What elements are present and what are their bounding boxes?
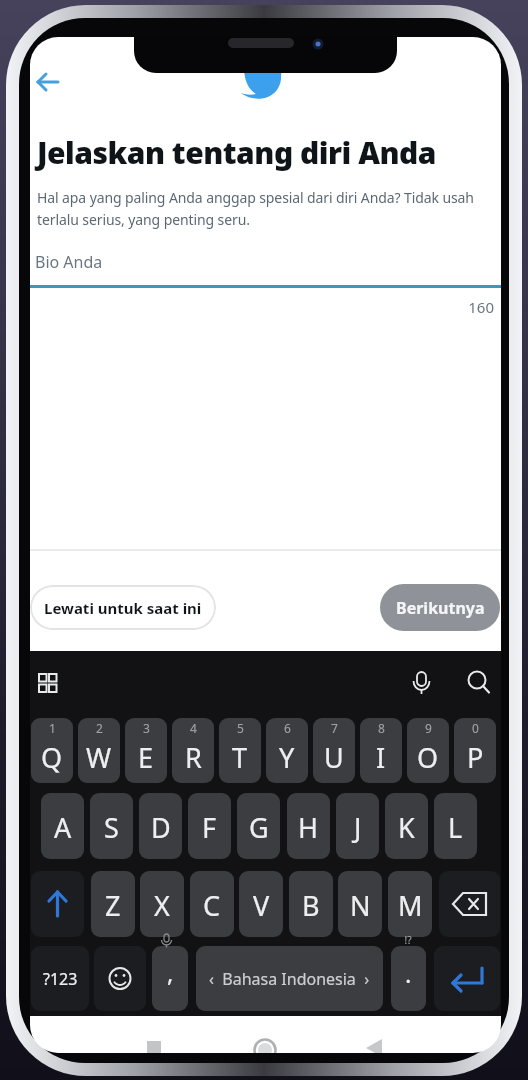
- staticText: A: [54, 809, 72, 846]
- staticText: U: [324, 739, 344, 776]
- staticText: D: [151, 809, 171, 846]
- button[interactable]: F: [188, 793, 231, 859]
- staticText: 160: [414, 297, 494, 317]
- staticText: R: [185, 739, 202, 776]
- button[interactable]: 2: [78, 718, 120, 783]
- staticText: F: [202, 809, 217, 846]
- button[interactable]: A: [41, 793, 84, 859]
- staticText: Berikutnya: [396, 597, 485, 619]
- button[interactable]: Berikutnya: [380, 584, 500, 631]
- staticText: ?123: [43, 968, 78, 990]
- staticText: 5: [237, 720, 244, 736]
- staticText: Lewati untuk saat ini: [44, 598, 202, 618]
- staticText: N: [350, 887, 371, 924]
- button[interactable]: .: [391, 946, 426, 1011]
- staticText: Y: [279, 739, 295, 776]
- button[interactable]: 4: [172, 718, 214, 783]
- button[interactable]: [31, 871, 84, 937]
- button[interactable]: C: [190, 871, 234, 937]
- staticText: B: [302, 887, 320, 924]
- button[interactable]: Z: [91, 871, 135, 937]
- button[interactable]: [32, 69, 64, 97]
- button[interactable]: [434, 946, 500, 1011]
- staticText: G: [249, 809, 269, 846]
- button[interactable]: K: [385, 793, 428, 859]
- staticText: !?: [398, 933, 418, 947]
- button[interactable]: D: [139, 793, 182, 859]
- staticText: 9: [425, 720, 432, 736]
- staticText: 7: [331, 720, 338, 736]
- button[interactable]: 6: [266, 718, 308, 783]
- button[interactable]: 8: [360, 718, 402, 783]
- button[interactable]: V: [239, 871, 283, 937]
- button[interactable]: 3: [125, 718, 167, 783]
- button[interactable]: Lewati untuk saat ini: [30, 585, 216, 630]
- button[interactable]: [439, 871, 500, 937]
- button[interactable]: 9: [407, 718, 449, 783]
- staticText: K: [398, 809, 415, 846]
- button[interactable]: B: [289, 871, 333, 937]
- button[interactable]: [94, 946, 146, 1011]
- button[interactable]: J: [336, 793, 379, 859]
- staticText: ,: [167, 956, 174, 989]
- staticText: J: [354, 809, 362, 846]
- button[interactable]: 5: [219, 718, 261, 783]
- button[interactable]: ?123: [31, 946, 89, 1011]
- staticText: T: [232, 739, 248, 776]
- staticText: Q: [41, 739, 63, 776]
- staticText: 6: [284, 720, 291, 736]
- staticText: I: [376, 739, 386, 776]
- button[interactable]: 1: [31, 718, 73, 783]
- button[interactable]: M: [388, 871, 432, 937]
- button[interactable]: H: [287, 793, 330, 859]
- staticText: 2: [96, 720, 103, 736]
- staticText: X: [154, 887, 170, 924]
- staticText: M: [398, 887, 423, 924]
- staticText: Z: [105, 887, 121, 924]
- staticText: 4: [190, 720, 197, 736]
- staticText: Jelaskan tentang diri Anda: [37, 132, 436, 173]
- staticText: O: [417, 739, 439, 776]
- staticText: E: [138, 739, 154, 776]
- staticText: H: [298, 809, 319, 846]
- button[interactable]: 7: [313, 718, 355, 783]
- staticText: .: [405, 957, 412, 990]
- staticText: C: [203, 887, 221, 924]
- button[interactable]: ‹ Bahasa Indonesia ›: [196, 946, 383, 1011]
- staticText: 1: [49, 720, 56, 736]
- staticText: 0: [472, 720, 479, 736]
- button[interactable]: X: [140, 871, 184, 937]
- staticText: S: [104, 809, 119, 846]
- button[interactable]: N: [338, 871, 382, 937]
- staticText: Hal apa yang paling Anda anggap spesial …: [37, 188, 499, 234]
- staticText: ‹ Bahasa Indonesia ›: [209, 968, 370, 990]
- staticText: W: [86, 739, 112, 776]
- button[interactable]: ,: [152, 946, 188, 1011]
- staticText: 3: [143, 720, 150, 736]
- button[interactable]: G: [237, 793, 280, 859]
- staticText: Bio Anda: [35, 251, 103, 273]
- button[interactable]: S: [90, 793, 133, 859]
- button[interactable]: 0: [454, 718, 496, 783]
- staticText: P: [467, 739, 484, 776]
- button[interactable]: L: [434, 793, 477, 859]
- staticText: 8: [378, 720, 385, 736]
- staticText: L: [448, 809, 463, 846]
- staticText: V: [253, 887, 270, 924]
